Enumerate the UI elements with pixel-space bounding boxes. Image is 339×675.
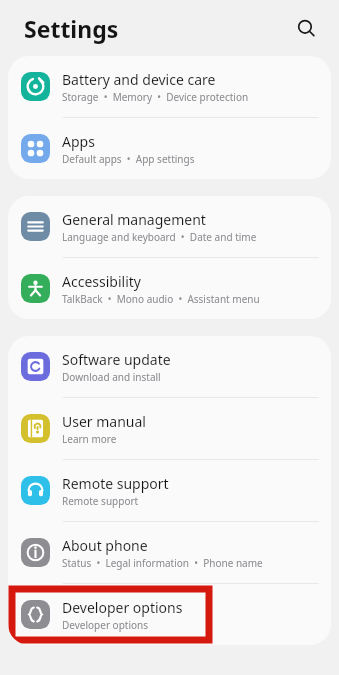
staticText: Settings — [24, 13, 119, 44]
button[interactable]: General management — [8, 196, 331, 257]
staticText: Remote support — [62, 474, 169, 493]
button[interactable]: Accessibility — [8, 258, 331, 319]
staticText: User manual — [62, 412, 146, 431]
button[interactable]: About phone — [8, 522, 331, 583]
staticText: Remote support — [62, 494, 139, 508]
button[interactable]: Apps — [8, 118, 331, 179]
button[interactable]: Developer options — [8, 584, 331, 645]
staticText: Battery and device care — [62, 70, 216, 89]
button[interactable]: Search — [289, 11, 323, 45]
staticText: Developer options — [62, 598, 183, 617]
staticText: Apps — [62, 132, 95, 151]
button[interactable]: User manual — [8, 398, 331, 459]
staticText: Default apps • App settings — [62, 152, 195, 166]
staticText: Software update — [62, 350, 171, 369]
staticText: General management — [62, 210, 206, 229]
staticText: Learn more — [62, 432, 117, 446]
staticText: Developer options — [62, 618, 149, 632]
staticText: About phone — [62, 536, 148, 555]
button[interactable]: Battery and device care — [8, 56, 331, 117]
button[interactable]: Remote support — [8, 460, 331, 521]
staticText: Status • Legal information • Phone name — [62, 556, 263, 570]
staticText: Language and keyboard • Date and time — [62, 230, 257, 244]
staticText: TalkBack • Mono audio • Assistant menu — [62, 292, 260, 306]
staticText: Storage • Memory • Device protection — [62, 90, 249, 104]
staticText: Accessibility — [62, 272, 141, 291]
staticText: Download and install — [62, 370, 161, 384]
button[interactable]: Software update — [8, 336, 331, 397]
